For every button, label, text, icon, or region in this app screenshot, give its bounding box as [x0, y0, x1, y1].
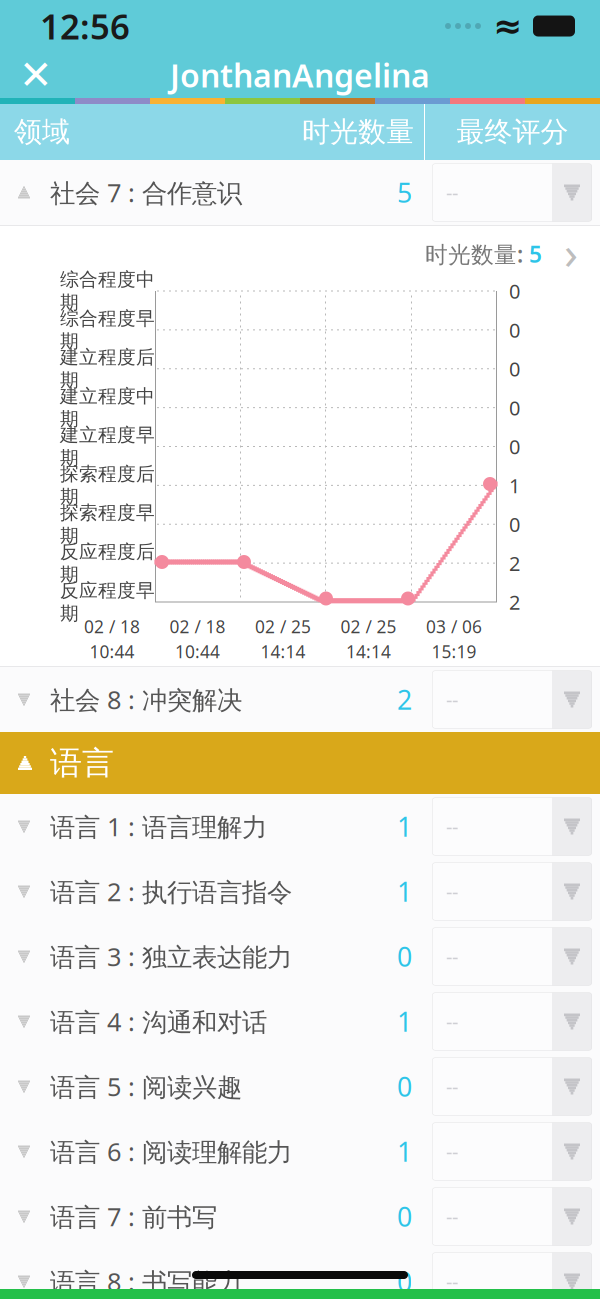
staticText: 语言 3 : 独立表达能力 [50, 940, 292, 973]
button[interactable]: 最终评分选择 [432, 1252, 592, 1299]
button[interactable]: 语言 2 : 执行语言指令 [0, 859, 600, 924]
staticText: ≈ [493, 6, 522, 46]
staticText: 03 / 06 [426, 615, 482, 638]
staticText: 0 [509, 278, 520, 304]
staticText: 2 [509, 550, 520, 576]
staticText: › [552, 222, 578, 282]
staticText: -- [446, 878, 458, 905]
staticText: 语言 [50, 743, 114, 783]
staticText: ✕ [19, 52, 53, 98]
button[interactable]: 语言 6 : 阅读理解能力 [0, 1119, 600, 1184]
button[interactable]: 社会 7 : 合作意识 [0, 160, 600, 225]
staticText: 0 [397, 1264, 412, 1299]
staticText: 语言 5 : 阅读兴趣 [50, 1070, 242, 1103]
button[interactable]: 语言 5 : 阅读兴趣 [0, 1054, 600, 1119]
staticText: -- [446, 1073, 458, 1100]
staticText: 0 [397, 939, 412, 974]
button[interactable]: 最终评分选择 [432, 992, 592, 1050]
staticText: 1 [397, 1004, 412, 1039]
button[interactable]: 最终评分选择 [432, 1187, 592, 1245]
staticText: 语言 7 : 前书写 [50, 1200, 217, 1233]
staticText: 02 / 18 [169, 615, 225, 638]
staticText: 2 [397, 682, 412, 717]
staticText: 14:14 [346, 640, 391, 663]
staticText: 12:56 [40, 3, 130, 49]
staticText: -- [446, 686, 458, 713]
button[interactable]: 语言 8 : 书写能力 [0, 1249, 600, 1299]
button[interactable]: 语言 7 : 前书写 [0, 1184, 600, 1249]
staticText: 0 [509, 355, 520, 382]
staticText: 0 [509, 511, 520, 538]
button[interactable]: 最终评分选择 [432, 1122, 592, 1180]
staticText: -- [446, 943, 458, 970]
button[interactable]: 最终评分选择 [432, 670, 592, 728]
staticText: 领域 [14, 115, 70, 149]
staticText: 02 / 25 [340, 615, 396, 638]
staticText: 0 [509, 317, 520, 343]
staticText: 02 / 18 [84, 615, 140, 638]
staticText: 1 [397, 1134, 412, 1169]
staticText: 1 [397, 809, 412, 844]
button[interactable]: 社会 8 : 冲突解决 [0, 667, 600, 732]
staticText: 反应程度早期 [60, 579, 155, 625]
staticText: -- [446, 1008, 458, 1035]
staticText: -- [446, 813, 458, 840]
staticText: -- [446, 1268, 458, 1295]
staticText: 建立程度早期 [60, 424, 155, 469]
staticText: 社会 7 : 合作意识 [50, 176, 242, 209]
button[interactable]: 最终评分选择 [432, 163, 592, 221]
staticText: 探索程度后期 [60, 462, 155, 508]
staticText: 语言 8 : 书写能力 [50, 1265, 242, 1298]
staticText: 语言 2 : 执行语言指令 [50, 875, 292, 908]
button[interactable]: 最终评分选择 [432, 927, 592, 985]
staticText: 5 [397, 175, 412, 210]
staticText: 1 [397, 874, 412, 909]
staticText: 14:14 [260, 640, 305, 663]
button[interactable]: 语言 4 : 沟通和对话 [0, 989, 600, 1054]
button[interactable]: 语言 3 : 独立表达能力 [0, 924, 600, 989]
staticText: 最终评分 [456, 115, 568, 149]
staticText: 语言 6 : 阅读理解能力 [50, 1135, 292, 1168]
staticText: 时光数量: [425, 239, 523, 269]
staticText: -- [446, 179, 458, 206]
staticText: 建立程度中期 [60, 385, 155, 431]
staticText: 1 [509, 472, 520, 499]
staticText: 综合程度早期 [60, 307, 155, 353]
button[interactable]: 最终评分选择 [432, 797, 592, 855]
button[interactable]: 关闭 [8, 52, 64, 98]
staticText: -- [446, 1138, 458, 1165]
staticText: 建立程度后期 [60, 346, 155, 392]
staticText: 反应程度后期 [60, 540, 155, 586]
staticText: 10:44 [89, 640, 134, 663]
button[interactable]: 语言 [0, 732, 600, 794]
staticText: 社会 8 : 冲突解决 [50, 683, 242, 716]
staticText: 0 [397, 1069, 412, 1104]
staticText: 2 [509, 589, 520, 615]
staticText: 0 [397, 1199, 412, 1234]
button[interactable]: 时光数量: [0, 226, 600, 282]
staticText: -- [446, 1203, 458, 1230]
button[interactable]: 语言 1 : 语言理解力 [0, 794, 600, 859]
staticText: 语言 1 : 语言理解力 [50, 810, 267, 843]
staticText: 语言 4 : 沟通和对话 [50, 1005, 267, 1038]
staticText: 0 [509, 433, 520, 460]
staticText: 15:19 [431, 640, 476, 663]
staticText: 02 / 25 [255, 615, 311, 638]
staticText: 时光数量 [302, 115, 414, 149]
staticText: 探索程度早期 [60, 501, 155, 547]
button[interactable]: 最终评分选择 [432, 1057, 592, 1115]
staticText: 5 [523, 239, 542, 269]
button[interactable]: 最终评分选择 [432, 862, 592, 920]
staticText: 10:44 [175, 640, 220, 663]
staticText: 0 [509, 394, 520, 421]
staticText: JonthanAngelina [170, 54, 430, 96]
staticText: 综合程度中期 [60, 268, 155, 314]
